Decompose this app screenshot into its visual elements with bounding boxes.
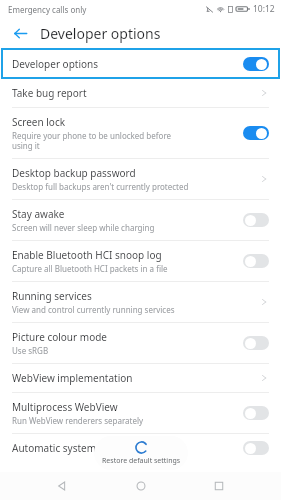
staticText: Run WebView renderers separately (12, 415, 144, 426)
button[interactable]: Enable Bluetooth HCI snoop log (0, 241, 281, 281)
staticText: Developer options (40, 24, 161, 43)
staticText: Running services (12, 289, 92, 303)
staticText: Picture colour mode (12, 330, 107, 344)
button[interactable]: Toggle on (243, 57, 269, 71)
staticText: Use sRGB (12, 345, 49, 356)
staticText: Enable Bluetooth HCI snoop log (12, 248, 162, 262)
button[interactable]: Stay awake (0, 200, 281, 240)
staticText: Stay awake (12, 207, 65, 221)
button[interactable]: Toggle on (243, 126, 269, 140)
staticText: Take bug report (12, 86, 87, 100)
staticText: Multiprocess WebView (12, 400, 118, 414)
button[interactable]: Developer options (1, 48, 280, 79)
staticText: Developer options (12, 57, 243, 71)
staticText: Screen will never sleep while charging (12, 222, 155, 233)
button[interactable]: Multiprocess WebView (0, 393, 281, 433)
button[interactable]: Toggle off (243, 336, 269, 350)
staticText: 10:12 (253, 3, 275, 15)
button[interactable]: WebView implementation (0, 364, 281, 392)
staticText: Emergency calls only (8, 4, 87, 15)
button[interactable]: Desktop backup password (0, 159, 281, 199)
staticText: Restore default settings (102, 456, 181, 466)
staticText: Desktop full backups aren't currently pr… (12, 181, 189, 192)
staticText: View and control currently running servi… (12, 304, 175, 315)
staticText: WebView implementation (12, 371, 133, 385)
button[interactable]: Toggle off (243, 213, 269, 227)
staticText: Desktop backup password (12, 166, 136, 180)
button[interactable]: Back (8, 21, 32, 45)
button[interactable]: Recent apps (202, 472, 236, 500)
button[interactable]: Screen lock (0, 108, 281, 158)
button[interactable]: Toggle off (243, 254, 269, 268)
button[interactable]: Take bug report (0, 79, 281, 107)
button[interactable]: Toggle off (243, 406, 269, 420)
staticText: Screen lock (12, 115, 66, 129)
button[interactable]: Picture colour mode (0, 323, 281, 363)
button[interactable]: Back (45, 472, 79, 500)
staticText: Capture all Bluetooth HCI packets in a f… (12, 263, 168, 274)
staticText: Automatic system updates (12, 441, 137, 455)
button[interactable]: Toggle off (243, 441, 269, 455)
button[interactable]: Home (124, 472, 158, 500)
staticText: Require your phone to be unlocked before… (12, 130, 172, 151)
button[interactable]: Running services (0, 282, 281, 322)
button[interactable]: Automatic system updates (0, 434, 281, 462)
